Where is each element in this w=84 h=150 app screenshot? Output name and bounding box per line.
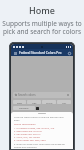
staticText: 1. FS number criteria, like: 35 3614, 31…	[14, 127, 70, 130]
staticText: Search functionality:	[14, 123, 70, 126]
button[interactable]: Search colors	[13, 92, 71, 98]
staticText: HSL	[62, 101, 67, 104]
button[interactable]: HSL	[57, 100, 71, 104]
button[interactable]: CMYK	[42, 100, 56, 104]
staticText: 3. HEX values like: 3F2A1C	[14, 133, 70, 136]
button[interactable]: HEX	[27, 100, 41, 104]
staticText: CMYK	[46, 101, 53, 104]
staticText: RGB	[17, 101, 22, 104]
button[interactable]: Open navigation menu	[13, 51, 17, 55]
button[interactable]: More options	[67, 51, 71, 55]
staticText: Home	[29, 4, 55, 16]
staticText: picking and searching	[14, 146, 70, 149]
staticText: 2. RGB values like: 25 25 25	[14, 130, 70, 133]
staticText: Search colors	[18, 93, 67, 97]
staticText: Federal Standard Colors Pro	[19, 51, 67, 55]
staticText: 4. CMYK, HSV, HSL values	[14, 136, 70, 139]
staticText: HEX	[32, 101, 37, 104]
button[interactable]: Color swatch	[36, 107, 39, 110]
staticText: infos.	[14, 119, 70, 122]
button[interactable]: Standard	[13, 106, 35, 110]
staticText: Supports multiple ways to pick and searc…	[2, 19, 82, 36]
staticText: Standard	[19, 107, 29, 110]
staticText: 5. Color names like: olive, sand	[14, 139, 70, 142]
staticText: Click the Menu button to see the functio…	[14, 116, 70, 119]
staticText: 6. Enter the single color code under the…	[14, 143, 70, 146]
button[interactable]: RGB	[13, 100, 26, 104]
button[interactable]: Drag handle	[38, 113, 46, 114]
